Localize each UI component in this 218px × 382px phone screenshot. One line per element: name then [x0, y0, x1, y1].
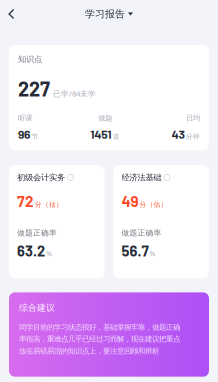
- staticText: 已学/84未学: [53, 88, 96, 99]
- staticText: 49: [121, 192, 138, 210]
- staticText: 分（估）: [139, 200, 167, 209]
- staticText: 初级会计实务: [17, 172, 65, 183]
- button[interactable]: Back: [0, 3, 23, 25]
- staticText: 同学目前的学习状态很好，基础掌握牢靠，做题正确: [19, 322, 180, 332]
- staticText: 道: [113, 132, 120, 141]
- staticText: 43: [171, 127, 184, 141]
- staticText: 经济法基础: [121, 172, 161, 183]
- staticText: 72: [17, 192, 34, 210]
- staticText: 分（估）: [35, 200, 63, 209]
- staticText: 知识点: [18, 54, 42, 64]
- staticText: 日均: [186, 113, 200, 123]
- staticText: 学习报告: [85, 8, 125, 20]
- staticText: 63.2: [17, 242, 45, 259]
- staticText: 分钟: [186, 132, 200, 141]
- staticText: 听课: [18, 113, 32, 123]
- staticText: 节: [31, 132, 38, 141]
- staticText: 放在易错易混的知识点上，要注意回顾和辨析: [19, 346, 159, 356]
- staticText: 做题正确率: [121, 228, 161, 238]
- staticText: 227: [18, 76, 50, 100]
- staticText: %: [46, 249, 52, 258]
- staticText: 做题正确率: [17, 228, 57, 238]
- staticText: 综合建议: [19, 302, 55, 313]
- staticText: 做题: [98, 113, 112, 123]
- staticText: 96: [18, 127, 30, 141]
- staticText: 率很高，重难点几乎已经过习而解，现在建议把重点: [19, 334, 180, 344]
- staticText: %: [149, 249, 155, 258]
- staticText: 1451: [90, 127, 111, 141]
- staticText: 56.7: [121, 242, 148, 259]
